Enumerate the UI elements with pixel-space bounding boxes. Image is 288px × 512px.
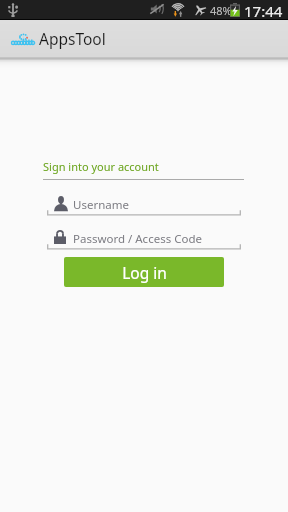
staticText: Password / Access Code [73, 231, 202, 247]
staticText: Username [73, 197, 129, 213]
staticText: Sign into your account [43, 159, 159, 174]
staticText: Log in [122, 262, 167, 283]
staticText: 17:44 [244, 1, 283, 21]
staticText: AppsTool [39, 28, 106, 49]
button[interactable]: Password / Access Code [47, 228, 241, 250]
staticText: 48% [210, 3, 232, 18]
button[interactable]: Log in [64, 257, 224, 287]
button[interactable]: Username [47, 194, 241, 216]
